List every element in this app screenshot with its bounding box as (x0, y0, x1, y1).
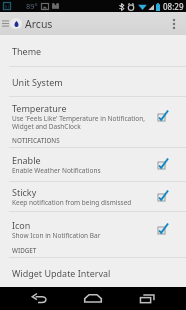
staticText: Enable Weather Notifications (12, 166, 101, 175)
button[interactable]: More options (162, 12, 186, 35)
staticText: Enable (12, 154, 41, 166)
staticText: Show Icon in Notification Bar (12, 231, 101, 240)
staticText: Unit System (12, 76, 63, 88)
staticText: Arcus (25, 17, 53, 31)
button[interactable]: Navigation drawer (0, 12, 10, 35)
staticText: WIDGET (12, 246, 37, 255)
button[interactable]: Enable (0, 148, 186, 181)
button[interactable]: Widget Update Interval (0, 258, 186, 287)
staticText: Widget Update Interval (12, 267, 111, 279)
button[interactable]: Temperature (0, 97, 186, 135)
staticText: NOTIFICATIONS (12, 136, 60, 145)
button[interactable]: Icon (0, 212, 186, 246)
button[interactable]: Home (66, 287, 120, 310)
button[interactable]: Unit System (0, 67, 186, 96)
staticText: 89° (26, 1, 38, 11)
button[interactable]: Sticky (0, 182, 186, 211)
staticText: 08:29 (163, 1, 184, 12)
button[interactable]: Recent apps (120, 287, 174, 310)
staticText: Keep notification from being dismissed (12, 198, 132, 207)
button[interactable]: Theme (0, 35, 186, 66)
staticText: Sticky (12, 186, 37, 198)
staticText: Temperature (12, 102, 67, 114)
staticText: Use 'Feels Like' Temperature in Notifica… (12, 114, 145, 131)
staticText: Theme (12, 45, 42, 57)
staticText: Icon (12, 219, 31, 231)
button[interactable]: Back (12, 287, 66, 310)
